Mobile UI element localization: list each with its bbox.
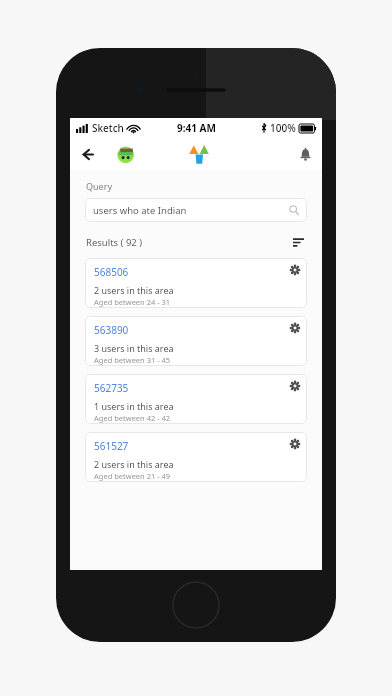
staticText: Aged between 31 - 45 — [94, 355, 171, 365]
button[interactable]: 561527 — [85, 432, 307, 482]
staticText: Aged between 24 - 31 — [94, 297, 171, 307]
staticText: 100% — [270, 121, 296, 135]
button[interactable]: Settings — [287, 378, 303, 394]
staticText: 563890 — [94, 323, 129, 337]
button[interactable]: users who ate Indian — [85, 198, 307, 222]
staticText: Results ( 92 ) — [86, 236, 143, 249]
button[interactable]: Settings — [287, 262, 303, 278]
button[interactable]: Notifications — [292, 141, 318, 167]
staticText: 568506 — [94, 265, 129, 279]
staticText: Query — [86, 180, 112, 192]
staticText: Aged between 42 - 42 — [94, 413, 171, 423]
staticText: 3 users in this area — [94, 342, 174, 354]
button[interactable]: 562735 — [85, 374, 307, 424]
staticText: Aged between 21 - 49 — [94, 471, 171, 481]
button[interactable]: Back — [74, 141, 100, 167]
button[interactable]: Profile — [114, 142, 138, 166]
staticText: users who ate Indian — [93, 204, 187, 217]
button[interactable]: Settings — [287, 436, 303, 452]
staticText: 2 users in this area — [94, 458, 174, 470]
staticText: 1 users in this area — [94, 400, 174, 412]
button[interactable]: Home — [186, 141, 212, 167]
button[interactable]: 563890 — [85, 316, 307, 366]
staticText: 2 users in this area — [94, 284, 174, 296]
button[interactable]: 568506 — [85, 258, 307, 308]
button[interactable]: Sort — [290, 234, 306, 250]
staticText: 561527 — [94, 439, 129, 453]
staticText: 562735 — [94, 381, 129, 395]
staticText: Sketch — [92, 121, 124, 135]
staticText: 9:41 AM — [177, 121, 216, 135]
button[interactable]: Settings — [287, 320, 303, 336]
